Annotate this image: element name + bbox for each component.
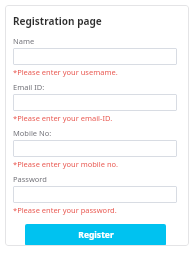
- staticText: *Please enter your usemame.: [13, 67, 118, 77]
- staticText: Register: [78, 229, 114, 241]
- staticText: *Please enter your mobile no.: [13, 159, 119, 169]
- button[interactable]: Register: [25, 224, 166, 246]
- button[interactable]: [13, 140, 177, 157]
- staticText: Email ID:: [13, 82, 45, 92]
- staticText: Mobile No:: [13, 128, 52, 138]
- button[interactable]: [13, 186, 177, 203]
- staticText: Registration page: [13, 14, 102, 28]
- staticText: *Please enter your password.: [13, 205, 117, 215]
- staticText: Password: [13, 174, 47, 184]
- button[interactable]: [13, 94, 177, 111]
- staticText: *Please enter your email-ID.: [13, 113, 113, 123]
- staticText: Name: [13, 36, 35, 46]
- button[interactable]: [13, 48, 177, 65]
